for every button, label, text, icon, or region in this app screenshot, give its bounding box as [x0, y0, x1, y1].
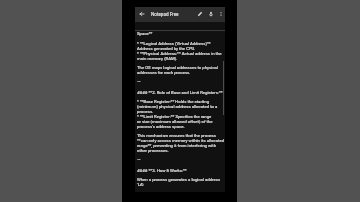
- staticText: * **Logical Address (Virtual Address)** …: [137, 41, 225, 51]
- staticText: * **Base Register:** Holds the starting …: [137, 99, 225, 114]
- button[interactable]: Voice input: [206, 9, 215, 18]
- button[interactable]: Edit: [195, 9, 204, 18]
- staticText: The OS maps logical addresses to physica…: [137, 65, 225, 75]
- staticText: This mechanism ensures that the process …: [137, 133, 225, 143]
- staticText: #### **2. Role of Base and Limit Registe…: [137, 90, 225, 95]
- staticText: * **Physical Address:** Actual address i…: [137, 51, 225, 61]
- staticText: When a process generates a logical addre…: [137, 177, 225, 187]
- button[interactable]: Navigate up: [137, 9, 146, 18]
- staticText: Notepad Free: [151, 12, 179, 17]
- staticText: ---: [137, 157, 225, 162]
- button[interactable]: More options: [216, 9, 225, 18]
- staticText: #### **3. How It Works:**: [137, 168, 225, 173]
- staticText: Space**: [137, 31, 225, 36]
- staticText: ---: [137, 79, 225, 84]
- staticText: * **Limit Register:** Specifies the rang…: [137, 114, 225, 129]
- staticText: range**, preventing it from interfering …: [137, 143, 225, 153]
